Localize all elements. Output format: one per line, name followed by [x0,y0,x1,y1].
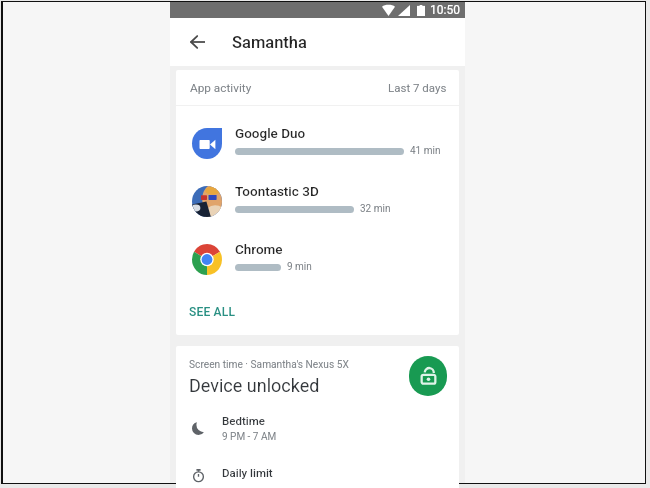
staticText: Last 7 days [388,81,447,94]
staticText: Daily limit [222,466,273,479]
staticText: 41 min [410,145,441,157]
button[interactable]: Chrome [176,230,459,288]
staticText: Bedtime [222,414,265,427]
button[interactable]: Daily limit [176,448,459,488]
staticText: App activity [190,81,252,95]
button[interactable]: Bedtime [176,404,459,452]
staticText: Samantha [232,33,307,52]
staticText: 9 PM - 7 AM [222,431,277,443]
staticText: SEE ALL [189,305,236,319]
staticText: Device unlocked [189,375,320,396]
staticText: 10:50 [430,3,460,17]
button[interactable]: Back [180,25,214,59]
staticText: Google Duo [235,125,306,141]
staticText: 32 min [360,203,391,215]
staticText: Screen time · Samantha's Nexus 5X [189,359,349,371]
button[interactable]: Google Duo [176,114,459,172]
staticText: Chrome [235,241,283,257]
button[interactable]: Lock device [409,356,447,396]
button[interactable]: Toontastic 3D [176,172,459,230]
staticText: 9 min [287,261,312,273]
button[interactable]: SEE ALL [176,288,459,335]
staticText: Toontastic 3D [235,183,319,199]
